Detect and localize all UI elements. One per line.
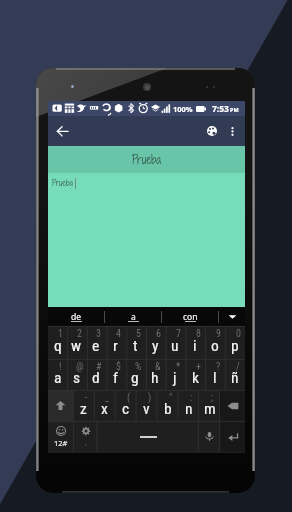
staticText: & xyxy=(155,361,161,373)
staticText: / xyxy=(236,361,240,373)
button[interactable]: # xyxy=(86,359,105,390)
button[interactable]: - xyxy=(73,390,94,421)
button[interactable]: ! xyxy=(48,359,67,390)
staticText: % xyxy=(135,361,142,373)
button[interactable]: 2 xyxy=(67,326,86,359)
staticText: 100% xyxy=(173,104,193,114)
staticText: o xyxy=(211,337,219,355)
staticText: k xyxy=(192,369,199,387)
button[interactable]: More options xyxy=(222,121,242,141)
button[interactable]: ) xyxy=(136,390,157,421)
staticText: ( xyxy=(127,392,131,404)
staticText: con xyxy=(183,311,198,323)
staticText: u xyxy=(171,337,179,355)
staticText: + xyxy=(196,361,201,373)
staticText: @ xyxy=(76,361,84,373)
button[interactable]: Backspace xyxy=(220,390,245,421)
staticText: v xyxy=(143,400,150,418)
staticText: 8 xyxy=(196,328,201,340)
staticText: # xyxy=(96,361,102,373)
staticText: ? xyxy=(216,361,221,373)
staticText: r xyxy=(113,337,118,355)
button[interactable]: a xyxy=(105,307,161,326)
staticText: Prueba xyxy=(52,177,73,189)
button[interactable]: / xyxy=(225,359,245,390)
button[interactable]: ; xyxy=(199,390,220,421)
staticText: ! xyxy=(59,361,62,373)
button[interactable]: " xyxy=(157,390,178,421)
staticText: e xyxy=(92,337,100,355)
button[interactable]: Voice input xyxy=(199,421,220,452)
button[interactable]: More suggestions xyxy=(219,307,245,326)
staticText: p xyxy=(231,337,239,355)
button[interactable]: con xyxy=(162,307,218,326)
button[interactable]: + xyxy=(185,359,205,390)
button[interactable]: de xyxy=(48,307,104,326)
button[interactable]: 4 xyxy=(105,326,125,359)
staticText: de xyxy=(71,311,82,323)
staticText: Prueba xyxy=(132,152,161,168)
staticText: 5 xyxy=(136,328,141,340)
staticText: 6 xyxy=(156,328,161,340)
button[interactable]: Navigate up xyxy=(50,119,74,143)
button[interactable]: % xyxy=(125,359,145,390)
staticText: 2 xyxy=(77,328,82,340)
button[interactable]: _ xyxy=(94,390,115,421)
staticText: i xyxy=(193,337,197,355)
button[interactable]: 1 xyxy=(48,326,67,359)
button[interactable]: Keyboard settings xyxy=(74,421,97,452)
staticText: d xyxy=(92,369,100,387)
button[interactable]: Shift xyxy=(48,390,73,421)
staticText: _ xyxy=(105,392,110,404)
staticText: a xyxy=(131,311,136,323)
button[interactable]: Emoji and symbols xyxy=(48,421,74,452)
staticText: l xyxy=(213,369,217,387)
staticText: s xyxy=(73,369,81,387)
button[interactable]: * xyxy=(165,359,185,390)
button[interactable]: 0 xyxy=(225,326,245,359)
staticText: n xyxy=(185,400,193,418)
staticText: a xyxy=(54,369,62,387)
button[interactable]: 6 xyxy=(145,326,165,359)
staticText: 12# xyxy=(54,438,68,448)
button[interactable]: ? xyxy=(205,359,225,390)
staticText: t xyxy=(133,337,138,355)
button[interactable]: Enter xyxy=(220,421,245,452)
staticText: 7:53 xyxy=(212,103,229,115)
staticText: " xyxy=(169,392,173,404)
staticText: g xyxy=(131,369,139,387)
staticText: 3 xyxy=(96,328,101,340)
staticText: 7 xyxy=(176,328,181,340)
staticText: z xyxy=(80,400,87,418)
button[interactable]: 8 xyxy=(185,326,205,359)
button[interactable]: $ xyxy=(105,359,125,390)
staticText: ; xyxy=(211,392,214,404)
staticText: f xyxy=(113,369,118,387)
button[interactable]: 3 xyxy=(86,326,105,359)
staticText: * xyxy=(176,361,181,373)
button[interactable]: 9 xyxy=(205,326,225,359)
staticText: b xyxy=(164,400,172,418)
staticText: h xyxy=(151,369,159,387)
button[interactable]: 7 xyxy=(165,326,185,359)
staticText: $ xyxy=(116,361,121,373)
staticText: ñ xyxy=(231,369,239,387)
button[interactable]: 5 xyxy=(125,326,145,359)
staticText: w xyxy=(71,337,82,355)
staticText: - xyxy=(85,392,88,404)
button[interactable]: & xyxy=(145,359,165,390)
staticText: : xyxy=(190,392,193,404)
staticText: 9 xyxy=(216,328,221,340)
button[interactable]: ( xyxy=(115,390,136,421)
staticText: q xyxy=(54,337,62,355)
staticText: 1 xyxy=(58,328,63,340)
staticText: , xyxy=(85,438,87,448)
staticText: 4 xyxy=(116,328,121,340)
staticText: PM xyxy=(230,106,239,113)
staticText: c xyxy=(122,400,130,418)
button[interactable]: : xyxy=(178,390,199,421)
staticText: j xyxy=(173,369,177,387)
button[interactable]: @ xyxy=(67,359,86,390)
button[interactable]: Space xyxy=(97,421,199,452)
button[interactable]: Change colour xyxy=(201,120,223,142)
